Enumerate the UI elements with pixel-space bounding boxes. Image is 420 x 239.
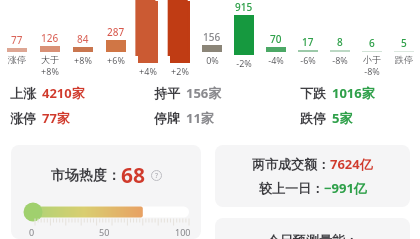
staticText: 915 [235,0,253,14]
button[interactable]: 市场热度： [11,145,201,239]
staticText: 持平 [154,85,180,101]
staticText: 50 [99,226,110,238]
staticText: 4210家 [42,84,85,102]
staticText: 126 [41,31,59,45]
staticText: 涨停 [8,54,26,65]
staticText: 156家 [186,84,222,102]
button[interactable]: 6 [356,0,388,78]
staticText: 287 [107,25,125,39]
button[interactable]: 8 [324,0,356,78]
button[interactable]: 70 [260,0,292,78]
staticText: −991亿 [324,179,367,197]
staticText: 77家 [42,109,70,127]
staticText: 7624亿 [330,155,373,173]
button[interactable]: 77 [0,0,33,78]
staticText: -8% [332,54,348,66]
staticText: 涨停 [10,110,36,126]
button[interactable]: 两市成交额： [215,145,410,207]
button[interactable]: 126 [33,0,66,78]
button[interactable]: +4% [132,0,164,78]
button[interactable]: 156 [196,0,228,78]
staticText: +2% [171,65,189,77]
staticText: +8% [74,54,92,66]
staticText: 70 [270,32,282,46]
staticText: -4% [268,54,284,66]
staticText: -2% [236,57,252,69]
button[interactable]: 17 [292,0,324,78]
staticText: 11家 [186,109,214,127]
button[interactable]: 帮助 [151,170,162,181]
button[interactable]: 今日预测量能： [215,218,410,239]
staticText: 较上一日： [259,180,324,196]
staticText: 156 [203,30,221,44]
staticText: 今日预测量能： [267,232,358,239]
button[interactable]: +2% [164,0,196,78]
staticText: +6% [107,54,125,66]
staticText: 5 [401,36,407,50]
staticText: 8 [337,35,343,49]
button[interactable]: 下跌 [300,84,420,102]
staticText: 1016家 [332,84,375,102]
staticText: 6 [369,36,375,50]
button[interactable]: 5 [388,0,420,78]
staticText: 0% [206,54,219,66]
staticText: 小于 [363,54,381,65]
staticText: 84 [77,32,89,46]
staticText: 两市成交额： [252,156,330,172]
staticText: -6% [300,54,316,66]
button[interactable]: 84 [66,0,99,78]
staticText: 上涨 [10,85,36,101]
staticText: 大于 [41,54,59,65]
staticText: -8% [364,65,380,77]
staticText: 跌停 [395,54,413,65]
button[interactable]: 持平 [154,84,280,102]
button[interactable]: 涨停 [10,109,140,127]
staticText: 下跌 [300,85,326,101]
button[interactable]: 上涨 [10,84,140,102]
staticText: 100 [175,226,191,238]
staticText: +8% [41,65,59,77]
staticText: ? [155,171,159,181]
staticText: 5家 [332,109,353,127]
staticText: 停牌 [154,110,180,126]
staticText: 跌停 [300,110,326,126]
button[interactable]: 跌停 [300,109,420,127]
staticText: 77 [11,33,23,47]
button[interactable]: 287 [99,0,132,78]
button[interactable]: 915 [228,0,260,78]
staticText: 0 [29,226,35,238]
button[interactable]: 停牌 [154,109,280,127]
staticText: +4% [139,65,157,77]
staticText: 市场热度： [51,167,121,185]
staticText: 17 [302,35,314,49]
staticText: 68 [121,161,146,190]
